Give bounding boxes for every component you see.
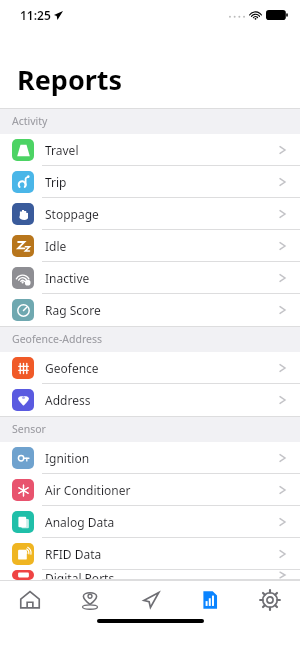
button[interactable]: Stoppage bbox=[0, 198, 300, 230]
staticText: Reports bbox=[17, 61, 123, 98]
button[interactable]: Settings bbox=[240, 581, 300, 619]
staticText: Digital Ports bbox=[45, 570, 279, 580]
button[interactable]: Idle bbox=[0, 230, 300, 262]
staticText: Idle bbox=[45, 238, 279, 254]
button[interactable]: Address bbox=[0, 384, 300, 416]
button[interactable]: Inactive bbox=[0, 262, 300, 294]
staticText: Travel bbox=[45, 142, 279, 158]
button[interactable]: Travel bbox=[0, 134, 300, 166]
staticText: Geofence-Address bbox=[12, 332, 103, 346]
button[interactable]: Navigate bbox=[120, 581, 180, 619]
button[interactable]: Digital Ports bbox=[0, 570, 300, 580]
staticText: 11:25 bbox=[20, 7, 51, 23]
staticText: Activity bbox=[12, 114, 48, 128]
button[interactable]: Ignition bbox=[0, 442, 300, 474]
button[interactable]: Rag Score bbox=[0, 294, 300, 326]
staticText: Address bbox=[45, 392, 279, 408]
staticText: Sensor bbox=[12, 422, 46, 436]
staticText: RFID Data bbox=[45, 546, 279, 562]
button[interactable]: Trip bbox=[0, 166, 300, 198]
button[interactable]: Geofence bbox=[0, 352, 300, 384]
staticText: Ignition bbox=[45, 450, 279, 466]
staticText: Stoppage bbox=[45, 206, 279, 222]
staticText: Inactive bbox=[45, 270, 279, 286]
staticText: Air Conditioner bbox=[45, 482, 279, 498]
button[interactable]: Home bbox=[0, 581, 60, 619]
staticText: Analog Data bbox=[45, 514, 279, 530]
staticText: Rag Score bbox=[45, 302, 279, 318]
staticText: Geofence bbox=[45, 360, 279, 376]
staticText: Trip bbox=[45, 174, 279, 190]
button[interactable]: Reports bbox=[180, 581, 240, 619]
button[interactable]: Places bbox=[60, 581, 120, 619]
button[interactable]: Analog Data bbox=[0, 506, 300, 538]
button[interactable]: Air Conditioner bbox=[0, 474, 300, 506]
button[interactable]: RFID Data bbox=[0, 538, 300, 570]
